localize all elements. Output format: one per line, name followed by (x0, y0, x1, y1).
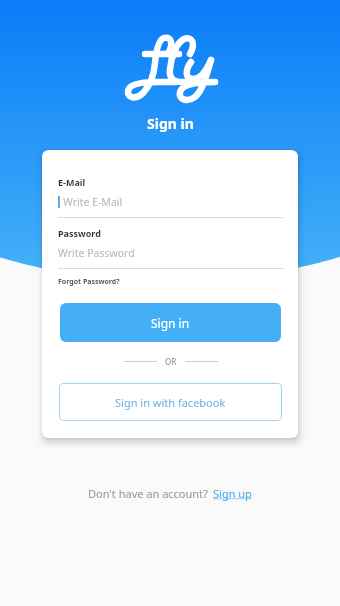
staticText: Write E-Mail (63, 195, 123, 209)
button[interactable]: Forgot Password? (58, 277, 120, 287)
button[interactable]: Sign in with facebook (59, 383, 282, 421)
other: fly (124, 34, 217, 103)
staticText: Forgot Password? (58, 277, 120, 287)
button[interactable]: Sign in (60, 303, 281, 342)
staticText: Sign in (151, 315, 190, 331)
button[interactable]: Sign up (213, 486, 252, 501)
staticText: Write Password (58, 246, 135, 260)
staticText: Don't have an account? (88, 486, 208, 501)
staticText: Sign in (147, 114, 194, 133)
staticText: Sign in with facebook (115, 395, 226, 410)
staticText: OR (165, 356, 177, 367)
staticText: E-Mail (58, 176, 86, 188)
staticText: Sign up (213, 486, 252, 501)
staticText: Password (58, 227, 101, 239)
